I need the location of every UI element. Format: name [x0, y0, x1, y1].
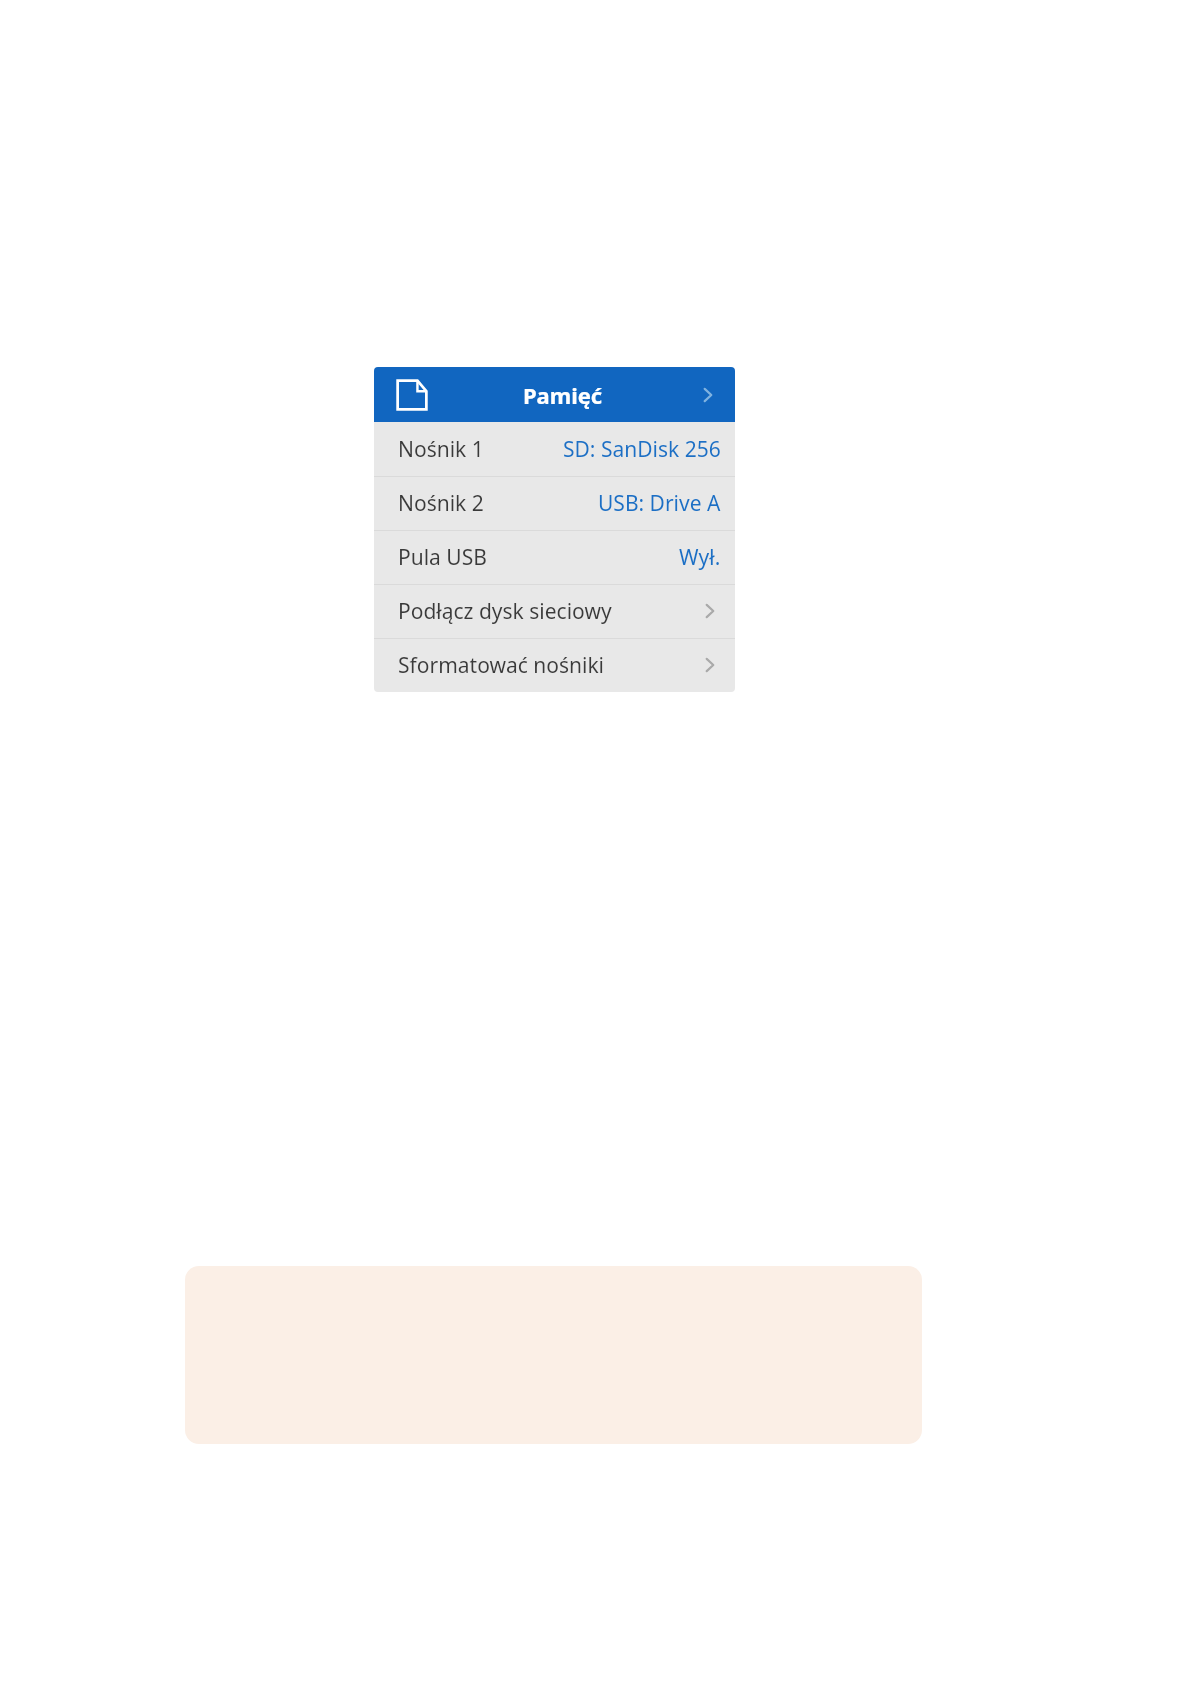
other: Open storage — [697, 384, 719, 406]
staticText: Pula USB — [398, 543, 487, 572]
staticText: Sformatować nośniki — [398, 651, 605, 680]
button[interactable]: Storage — [374, 367, 735, 422]
button[interactable]: Podłącz dysk sieciowy — [374, 584, 735, 638]
staticText: Pamięć — [428, 380, 697, 410]
button[interactable]: Sformatować nośniki — [374, 638, 735, 692]
button[interactable]: Nośnik 2 — [374, 476, 735, 530]
staticText: Podłącz dysk sieciowy — [398, 597, 612, 626]
staticText: USB: Drive A — [598, 489, 721, 518]
staticText: Nośnik 2 — [398, 489, 484, 518]
staticText: Wył. — [679, 543, 721, 572]
button[interactable]: Pula USB — [374, 530, 735, 584]
staticText: Nośnik 1 — [398, 435, 484, 464]
button[interactable]: Nośnik 1 — [374, 422, 735, 476]
staticText: SD: SanDisk 256 — [563, 435, 721, 464]
other: Storage — [396, 379, 428, 411]
